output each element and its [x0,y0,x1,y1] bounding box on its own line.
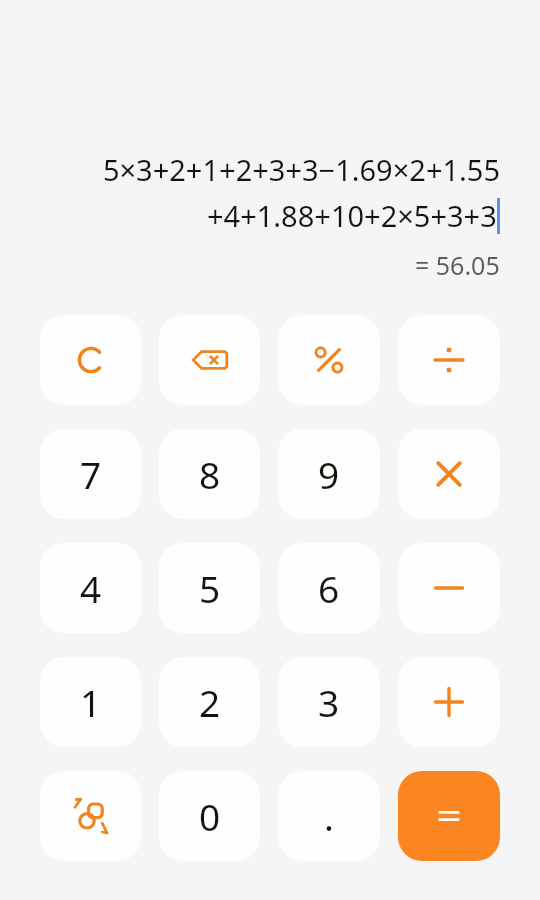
button[interactable]: Unit converter [40,771,141,861]
button[interactable]: 9 [278,429,380,519]
button[interactable]: 6 [278,543,380,633]
button[interactable]: 0 [159,771,260,861]
staticText: +4+1.88+10+2×5+3+3 [207,196,497,235]
staticText: . [324,791,334,841]
button[interactable]: Backspace [159,315,260,405]
button[interactable]: Minus [398,543,500,633]
button[interactable]: 7 [40,429,141,519]
button[interactable]: Divide [398,315,500,405]
button[interactable]: Multiply [398,429,500,519]
button[interactable]: 3 [278,657,380,747]
button[interactable]: Plus [398,657,500,747]
button[interactable]: 1 [40,657,141,747]
button[interactable]: 2 [159,657,260,747]
button[interactable]: . [278,771,380,861]
staticText: 8 [199,449,221,499]
staticText: 4 [80,563,102,613]
button[interactable]: 4 [40,543,141,633]
button[interactable]: 5 [159,543,260,633]
staticText: 7 [80,449,102,499]
staticText: 5 [199,563,221,613]
staticText: 5×3+2+1+2+3+3−1.69×2+1.55 [102,150,500,189]
staticText: 1 [80,677,102,727]
button[interactable]: Equals [398,771,500,861]
button[interactable]: Percent [278,315,380,405]
staticText: 2 [199,677,221,727]
staticText: 0 [199,791,221,841]
staticText: 9 [318,449,340,499]
staticText: 3 [318,677,340,727]
button[interactable]: 8 [159,429,260,519]
staticText: = 56.05 [415,248,500,282]
staticText: 6 [318,563,340,613]
button[interactable]: Clear [40,315,141,405]
